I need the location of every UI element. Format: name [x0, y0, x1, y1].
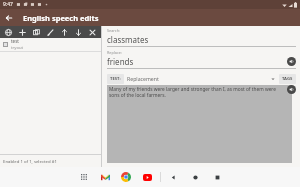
staticText: friends [107, 56, 287, 67]
button[interactable]: Home [190, 172, 201, 183]
button[interactable]: Chrome [120, 171, 132, 183]
staticText: Enabled 1 of 1, selected #1 [3, 158, 57, 164]
button[interactable]: Delete [87, 27, 98, 38]
staticText: Search: [107, 28, 121, 33]
staticText: English speech edits [23, 13, 99, 23]
button[interactable]: Language [3, 27, 14, 38]
button[interactable]: Gmail [99, 171, 111, 183]
staticText: Replace: [107, 50, 122, 55]
button[interactable]: YouTube [141, 171, 153, 183]
button[interactable]: Play audio [287, 57, 296, 66]
button[interactable]: test [0, 38, 101, 51]
staticText: classmates [107, 34, 149, 45]
button[interactable]: Many of my friends were larger and stron… [107, 85, 292, 163]
staticText: TAGS [282, 76, 293, 82]
button[interactable]: Copy [31, 27, 42, 38]
button[interactable]: Back [168, 172, 179, 183]
staticText: test [11, 38, 19, 44]
button[interactable]: Recent apps [212, 172, 223, 183]
button[interactable]: All apps [78, 171, 90, 183]
button[interactable]: TEST: [107, 74, 124, 84]
button[interactable]: Move down [73, 27, 84, 38]
button[interactable]: Edit [45, 27, 56, 38]
button[interactable]: Back [0, 9, 17, 26]
button[interactable]: Move up [59, 27, 70, 38]
staticText: 9:47 [3, 1, 13, 8]
button[interactable]: Play audio [287, 85, 296, 94]
staticText: Replacement [127, 75, 271, 82]
button[interactable]: Add [17, 27, 28, 38]
button[interactable]: Replacement [127, 75, 277, 82]
button[interactable]: TAGS [279, 74, 296, 84]
staticText: tryout [11, 45, 24, 51]
staticText: TEST: [110, 76, 121, 82]
staticText: Many of my friends were larger and stron… [109, 86, 281, 98]
